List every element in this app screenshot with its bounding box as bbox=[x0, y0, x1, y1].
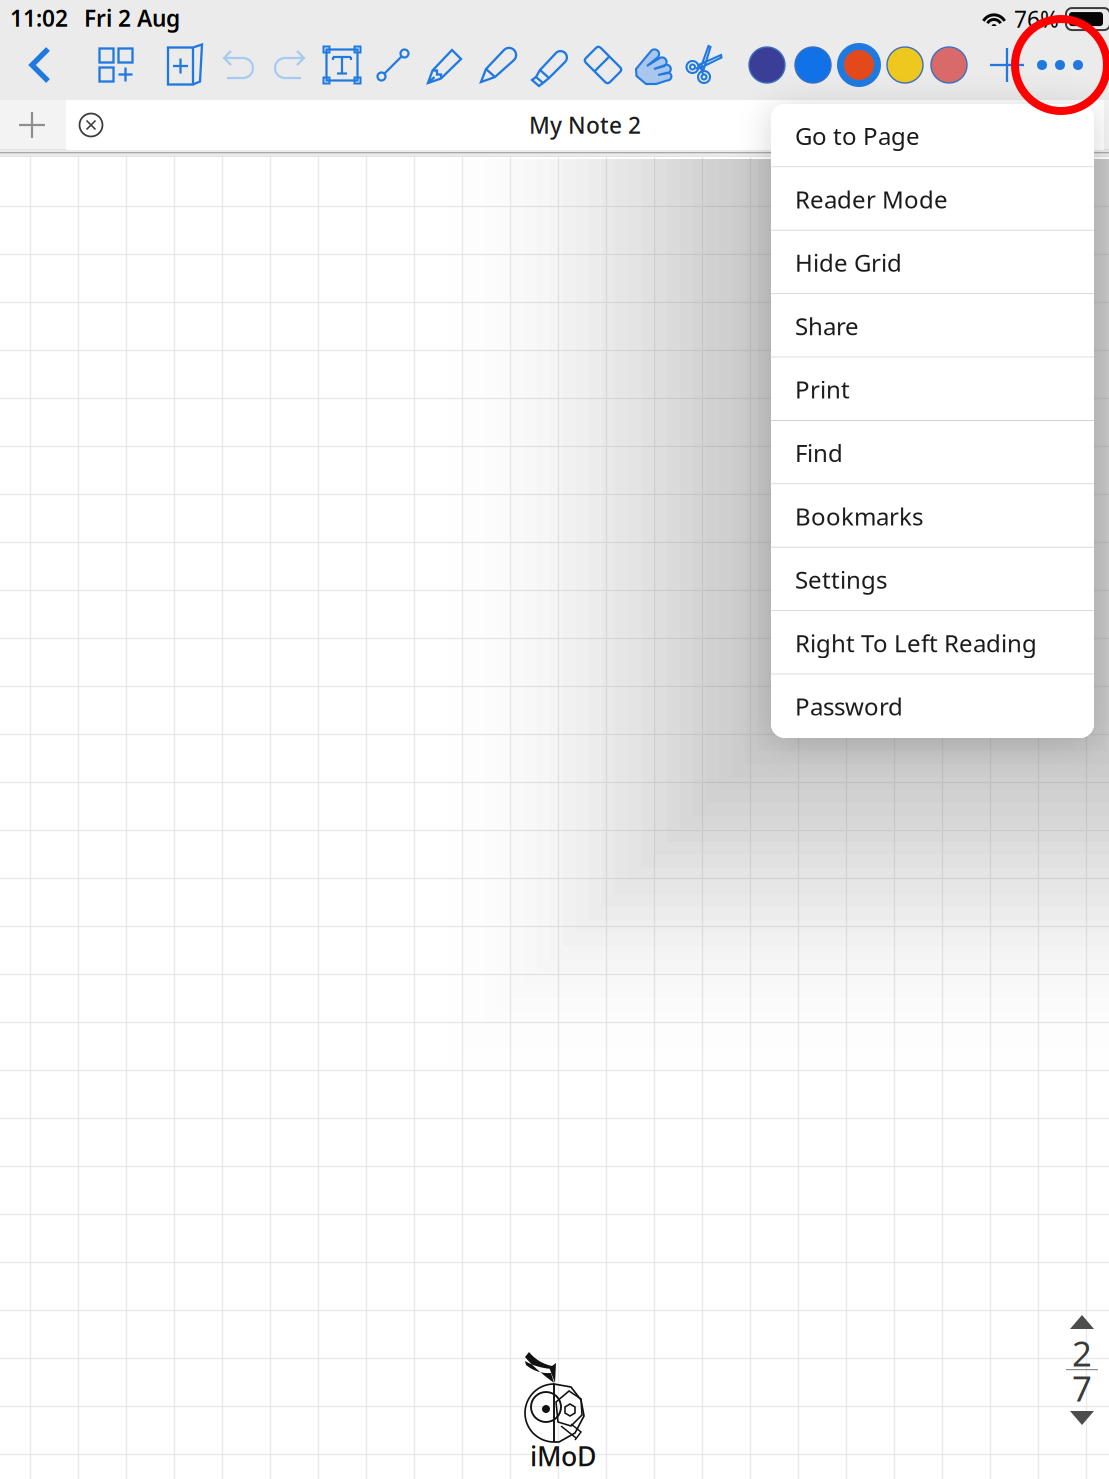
button[interactable]: Line bbox=[369, 39, 417, 91]
staticText: Share bbox=[795, 310, 859, 342]
button[interactable]: Blue bbox=[789, 39, 837, 91]
staticText: iMoD bbox=[530, 1438, 596, 1474]
button[interactable]: Redo bbox=[266, 39, 314, 91]
staticText: Right To Left Reading bbox=[795, 627, 1037, 659]
button[interactable]: Bookmarks bbox=[771, 484, 1094, 548]
staticText: Print bbox=[795, 373, 850, 405]
button[interactable]: Pages bbox=[92, 39, 140, 91]
button[interactable]: New page bbox=[161, 39, 209, 91]
button[interactable]: Text box bbox=[318, 39, 366, 91]
button[interactable]: Previous page bbox=[1059, 1312, 1105, 1332]
button[interactable]: Yellow bbox=[881, 39, 929, 91]
button[interactable]: Red bbox=[925, 39, 973, 91]
button[interactable]: Find bbox=[771, 421, 1094, 484]
staticText: Go to Page bbox=[795, 120, 920, 152]
staticText: Find bbox=[795, 437, 843, 469]
button[interactable]: Orange bbox=[835, 39, 883, 91]
button[interactable]: More bbox=[1036, 39, 1084, 91]
staticText: Reader Mode bbox=[795, 183, 948, 215]
button[interactable]: Share bbox=[771, 294, 1094, 358]
button[interactable]: Pencil bbox=[474, 39, 522, 91]
button[interactable]: Go to Page bbox=[771, 104, 1094, 167]
button[interactable]: Hand bbox=[630, 39, 678, 91]
button[interactable]: Print bbox=[771, 358, 1094, 421]
button[interactable]: Reader Mode bbox=[771, 167, 1094, 231]
button[interactable]: Next page bbox=[1059, 1408, 1105, 1428]
staticText: Password bbox=[795, 690, 903, 722]
button[interactable]: Right To Left Reading bbox=[771, 611, 1094, 675]
button[interactable]: Hide Grid bbox=[771, 231, 1094, 294]
button[interactable]: Back bbox=[16, 39, 64, 91]
staticText: 11:02 bbox=[10, 3, 68, 33]
staticText: Settings bbox=[795, 564, 887, 595]
button[interactable]: My Note 2 bbox=[66, 100, 1104, 150]
button[interactable]: Eraser bbox=[579, 39, 627, 91]
button[interactable]: New tab bbox=[0, 100, 64, 150]
button[interactable]: Highlighter bbox=[526, 39, 574, 91]
button[interactable]: Cut bbox=[681, 39, 729, 91]
staticText: My Note 2 bbox=[529, 110, 641, 140]
staticText: Fri 2 Aug bbox=[84, 3, 180, 33]
button[interactable]: Add colour bbox=[983, 39, 1031, 91]
button[interactable]: Indigo bbox=[743, 39, 791, 91]
staticText: Hide Grid bbox=[795, 247, 902, 278]
staticText: 2 bbox=[1072, 1330, 1092, 1376]
staticText: 7 bbox=[1072, 1365, 1092, 1411]
staticText: 76% bbox=[1014, 4, 1059, 34]
button[interactable]: Pen bbox=[422, 39, 470, 91]
button[interactable]: Password bbox=[771, 675, 1094, 738]
button[interactable]: Undo bbox=[214, 39, 262, 91]
button[interactable]: Settings bbox=[771, 548, 1094, 611]
staticText: Bookmarks bbox=[795, 500, 923, 532]
